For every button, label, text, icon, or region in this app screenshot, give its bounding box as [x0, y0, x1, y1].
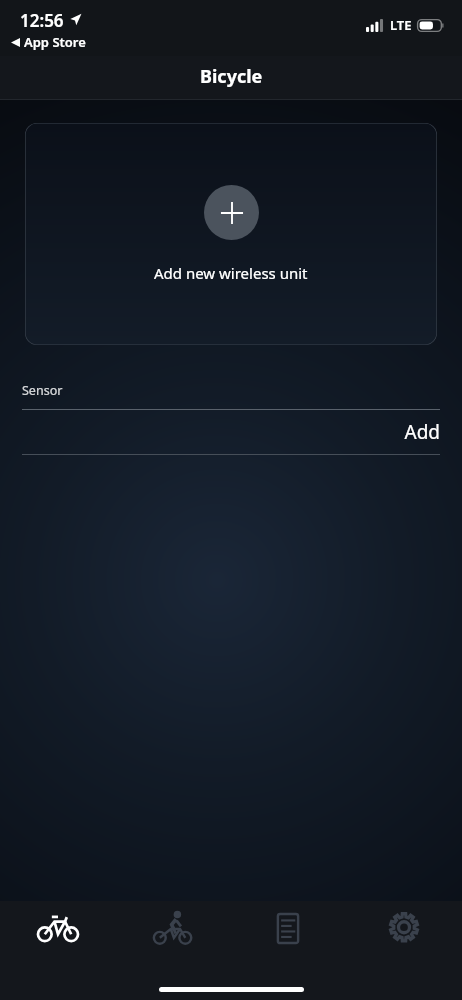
button[interactable]: Settings [346, 901, 462, 957]
button[interactable]: Log [230, 901, 346, 957]
staticText: Add [404, 419, 440, 445]
staticText: App Store [24, 33, 86, 51]
staticText: 12:56 [20, 9, 64, 32]
button[interactable]: Bicycle [0, 901, 115, 957]
staticText: Bicycle [200, 64, 263, 89]
button[interactable]: App Store [11, 33, 86, 51]
staticText: Sensor [22, 382, 63, 399]
staticText: LTE [390, 16, 412, 34]
button[interactable]: Add [22, 410, 440, 454]
button[interactable]: Add new wireless unit [25, 123, 437, 345]
button[interactable]: Ride [115, 901, 230, 957]
staticText: Add new wireless unit [154, 263, 308, 283]
